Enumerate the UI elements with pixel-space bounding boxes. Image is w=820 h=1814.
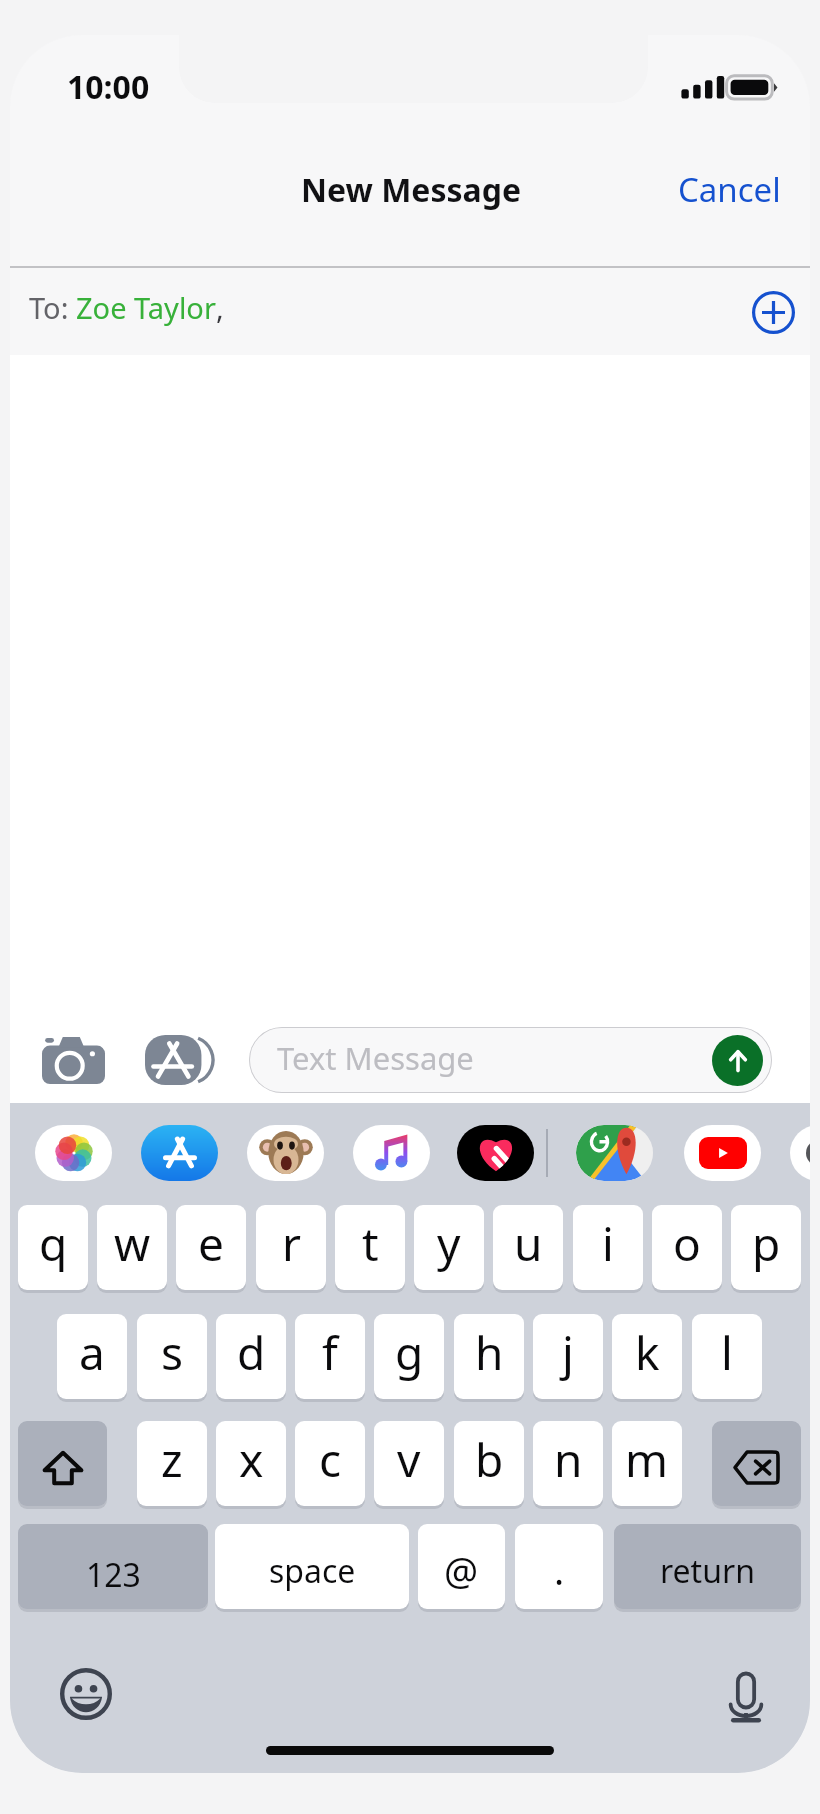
button[interactable] bbox=[712, 1421, 801, 1506]
button[interactable]: Maps bbox=[576, 1125, 653, 1181]
staticText: w bbox=[114, 1212, 151, 1275]
staticText: s bbox=[161, 1321, 184, 1384]
button[interactable]: Emoji bbox=[55, 1663, 117, 1725]
other: Photos bbox=[35, 1125, 112, 1181]
staticText: h bbox=[475, 1321, 504, 1384]
button[interactable]: Dictation bbox=[715, 1666, 777, 1728]
button[interactable]: g bbox=[374, 1314, 444, 1399]
button[interactable]: Camera bbox=[41, 1028, 105, 1092]
staticText: New Message bbox=[301, 168, 522, 212]
button[interactable]: m bbox=[612, 1421, 682, 1506]
button[interactable]: s bbox=[137, 1314, 207, 1399]
other: YouTube bbox=[684, 1125, 761, 1181]
staticText: k bbox=[635, 1321, 660, 1384]
button[interactable]: w bbox=[97, 1205, 167, 1290]
button[interactable]: d bbox=[216, 1314, 286, 1399]
button[interactable]: f bbox=[295, 1314, 365, 1399]
button[interactable]: Send bbox=[712, 1035, 763, 1086]
button[interactable] bbox=[247, 1125, 324, 1181]
staticText: Cancel bbox=[678, 167, 781, 212]
staticText: t bbox=[362, 1212, 379, 1275]
button[interactable] bbox=[684, 1125, 761, 1181]
staticText: y bbox=[437, 1212, 461, 1275]
staticText: e bbox=[198, 1212, 224, 1275]
button[interactable]: h bbox=[454, 1314, 524, 1399]
button[interactable]: More apps bbox=[790, 1125, 810, 1181]
staticText: q bbox=[39, 1212, 68, 1275]
staticText: c bbox=[319, 1428, 342, 1491]
button[interactable] bbox=[353, 1125, 430, 1181]
button[interactable]: x bbox=[216, 1421, 286, 1506]
button[interactable]: . bbox=[515, 1524, 603, 1609]
button[interactable]: q bbox=[18, 1205, 88, 1290]
staticText: l bbox=[721, 1321, 733, 1384]
staticText: r bbox=[282, 1212, 301, 1275]
staticText: j bbox=[562, 1321, 574, 1384]
button[interactable] bbox=[457, 1125, 534, 1181]
staticText: g bbox=[395, 1321, 424, 1384]
other: Music bbox=[353, 1125, 430, 1181]
staticText: b bbox=[475, 1428, 504, 1491]
other: Memoji bbox=[247, 1125, 324, 1181]
button[interactable]: t bbox=[335, 1205, 405, 1290]
button[interactable]: l bbox=[692, 1314, 762, 1399]
button[interactable]: z bbox=[137, 1421, 207, 1506]
button[interactable]: @ bbox=[418, 1524, 505, 1609]
staticText: To: bbox=[29, 288, 76, 327]
staticText: n bbox=[554, 1428, 583, 1491]
staticText: return bbox=[660, 1549, 755, 1593]
staticText: o bbox=[673, 1212, 701, 1275]
staticText: a bbox=[79, 1321, 105, 1384]
staticText: m bbox=[625, 1428, 669, 1491]
button[interactable]: o bbox=[652, 1205, 722, 1290]
staticText: . bbox=[554, 1544, 565, 1596]
staticText: Zoe Taylor bbox=[76, 288, 216, 327]
staticText: x bbox=[239, 1428, 264, 1491]
button[interactable]: Cancel bbox=[656, 155, 803, 224]
button[interactable]: Apps bbox=[145, 1026, 213, 1094]
button[interactable]: return bbox=[614, 1524, 801, 1609]
staticText: space bbox=[269, 1549, 356, 1593]
button[interactable]: Text Message bbox=[249, 1027, 772, 1093]
button[interactable] bbox=[141, 1125, 218, 1181]
button[interactable] bbox=[18, 1421, 107, 1506]
button[interactable]: r bbox=[256, 1205, 326, 1290]
other: Fitness bbox=[457, 1125, 534, 1181]
button[interactable]: i bbox=[573, 1205, 643, 1290]
button[interactable]: c bbox=[295, 1421, 365, 1506]
button[interactable]: j bbox=[533, 1314, 603, 1399]
staticText: v bbox=[397, 1428, 421, 1491]
other: Shift bbox=[18, 1421, 107, 1506]
staticText: , bbox=[216, 288, 224, 327]
staticText: u bbox=[514, 1212, 543, 1275]
staticText: z bbox=[161, 1428, 183, 1491]
button[interactable]: a bbox=[57, 1314, 127, 1399]
button[interactable]: u bbox=[493, 1205, 563, 1290]
staticText: 10:00 bbox=[67, 65, 150, 109]
button[interactable]: v bbox=[374, 1421, 444, 1506]
staticText: 123 bbox=[86, 1553, 141, 1597]
button[interactable]: e bbox=[176, 1205, 246, 1290]
staticText: f bbox=[322, 1321, 338, 1384]
button[interactable]: n bbox=[533, 1421, 603, 1506]
staticText: p bbox=[752, 1212, 781, 1275]
button[interactable]: b bbox=[454, 1421, 524, 1506]
other: App Store bbox=[141, 1125, 218, 1181]
button[interactable]: space bbox=[215, 1524, 409, 1609]
button[interactable]: p bbox=[731, 1205, 801, 1290]
staticText: Text Message bbox=[277, 1037, 474, 1079]
button[interactable]: y bbox=[414, 1205, 484, 1290]
button[interactable]: k bbox=[612, 1314, 682, 1399]
other: Backspace bbox=[712, 1421, 801, 1506]
staticText: i bbox=[602, 1212, 614, 1275]
staticText: @ bbox=[444, 1544, 479, 1596]
staticText: d bbox=[237, 1321, 266, 1384]
button[interactable]: Add contact bbox=[742, 281, 804, 343]
button[interactable] bbox=[35, 1125, 112, 1181]
button[interactable]: 123 bbox=[18, 1524, 208, 1609]
